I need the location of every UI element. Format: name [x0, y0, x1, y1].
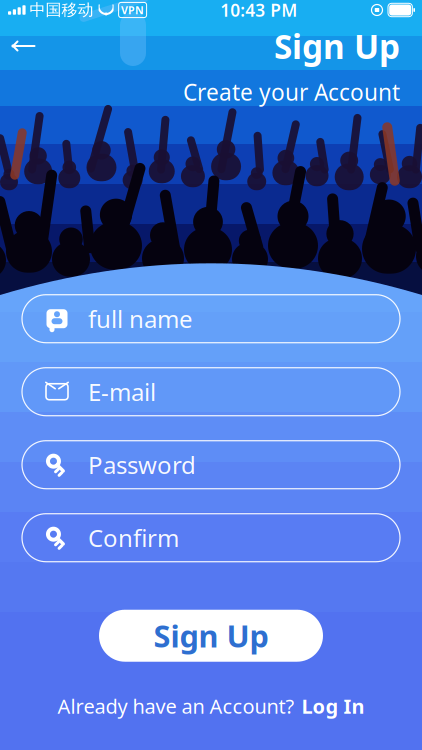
staticText: Confirm	[88, 522, 179, 554]
button[interactable]: Already have an Account?	[47, 688, 374, 724]
button[interactable]: Sign Up	[99, 610, 323, 662]
staticText: 10:43 PM	[220, 0, 297, 21]
staticText: Sign Up	[274, 24, 400, 68]
button[interactable]: E-mail	[22, 368, 400, 416]
staticText: Password	[88, 449, 196, 481]
staticText: VPN	[121, 3, 144, 17]
staticText: Already have an Account?	[57, 693, 294, 719]
staticText: E-mail	[88, 376, 156, 408]
staticText: Sign Up	[153, 615, 268, 656]
button[interactable]: Confirm	[22, 514, 400, 562]
button[interactable]: full name	[22, 295, 400, 343]
staticText: Create your Account	[183, 77, 400, 107]
staticText: full name	[88, 303, 193, 335]
staticText: Log In	[301, 693, 364, 719]
button[interactable]: Password	[22, 441, 400, 489]
button[interactable]: Back	[0, 26, 46, 66]
staticText: 中国移动	[30, 0, 94, 20]
